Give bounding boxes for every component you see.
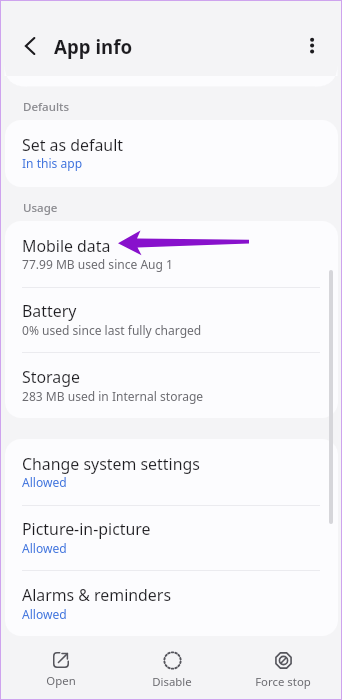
button[interactable] (5, 570, 338, 636)
button[interactable]: Back (21, 37, 39, 55)
staticText: Open (46, 673, 76, 689)
staticText: 283 MB used in Internal storage (22, 388, 204, 404)
button[interactable]: Force stop (233, 643, 333, 695)
button[interactable] (5, 439, 338, 505)
staticText: Storage (22, 366, 80, 388)
staticText: Disable (152, 674, 192, 690)
button[interactable]: Disable (122, 643, 222, 695)
staticText: App info (54, 34, 133, 59)
staticText: Alarms & reminders (22, 584, 171, 606)
button[interactable] (5, 221, 338, 287)
button[interactable] (5, 120, 338, 186)
button[interactable]: More options (300, 30, 324, 54)
staticText: 0% used since last fully charged (22, 322, 202, 338)
staticText: Battery (22, 300, 77, 322)
staticText: 77.99 MB used since Aug 1 (22, 256, 173, 272)
staticText: Set as default (22, 134, 123, 156)
staticText: Change system settings (22, 453, 200, 475)
staticText: Mobile data (22, 235, 111, 257)
button[interactable]: Open (11, 643, 111, 695)
staticText: Usage (23, 200, 58, 216)
button[interactable] (5, 505, 338, 571)
button[interactable] (5, 287, 338, 353)
staticText: Allowed (22, 606, 67, 622)
staticText: Allowed (22, 540, 67, 556)
staticText: Allowed (22, 474, 67, 490)
staticText: Defaults (23, 99, 69, 115)
staticText: Picture-in-picture (22, 518, 151, 540)
staticText: Force stop (255, 674, 311, 690)
button[interactable] (5, 352, 338, 418)
staticText: In this app (22, 155, 83, 171)
